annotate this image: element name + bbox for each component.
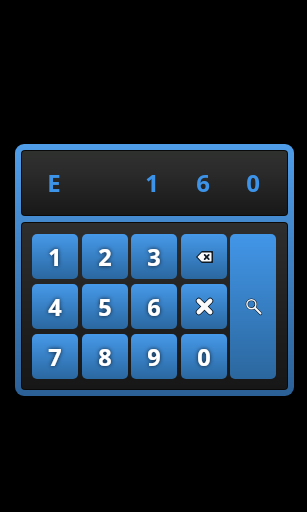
staticText: 4 xyxy=(48,291,62,323)
button[interactable]: 0 xyxy=(181,334,227,379)
button[interactable]: 3 xyxy=(131,234,177,279)
button[interactable]: Clear xyxy=(181,284,227,329)
staticText: 2 xyxy=(98,241,112,273)
staticText: 6 xyxy=(147,291,161,323)
staticText: 1 xyxy=(145,166,159,199)
button[interactable]: 5 xyxy=(82,284,128,329)
button[interactable]: 7 xyxy=(32,334,78,379)
staticText: 6 xyxy=(196,166,210,199)
staticText: 0 xyxy=(246,166,260,199)
staticText: 5 xyxy=(98,291,112,323)
button[interactable]: 8 xyxy=(82,334,128,379)
staticText: 9 xyxy=(147,341,161,373)
staticText: 7 xyxy=(48,341,62,373)
button[interactable]: 9 xyxy=(131,334,177,379)
staticText: 0 xyxy=(197,341,211,373)
button[interactable]: 2 xyxy=(82,234,128,279)
staticText: 8 xyxy=(98,341,112,373)
button[interactable]: 1 xyxy=(32,234,78,279)
staticText: 1 xyxy=(48,241,62,273)
button[interactable]: Search xyxy=(230,234,276,379)
staticText: 3 xyxy=(147,241,161,273)
button[interactable]: Backspace xyxy=(181,234,227,279)
button[interactable]: 4 xyxy=(32,284,78,329)
staticText: E xyxy=(47,166,61,199)
button[interactable]: 6 xyxy=(131,284,177,329)
